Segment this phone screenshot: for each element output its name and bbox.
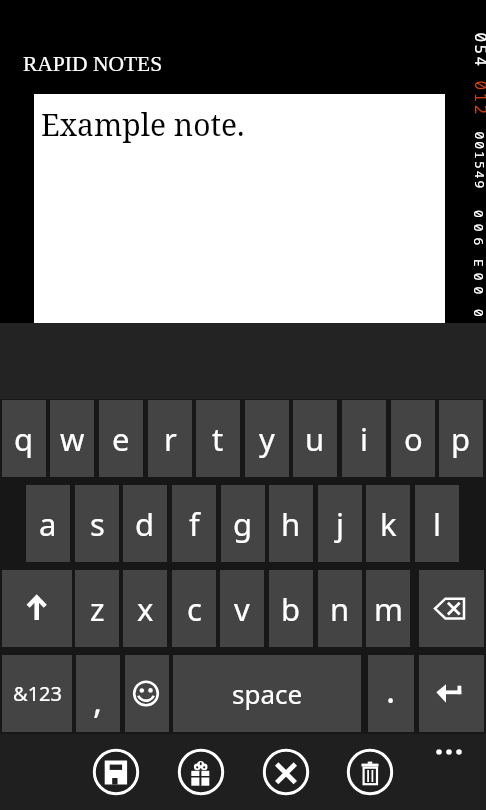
- staticText: c: [187, 588, 202, 630]
- staticText: x: [137, 588, 154, 630]
- staticText: j: [336, 503, 344, 545]
- staticText: o: [404, 418, 423, 460]
- staticText: Example note.: [41, 104, 245, 145]
- staticText: e: [112, 418, 130, 460]
- staticText: a: [39, 503, 57, 545]
- button[interactable]: j: [318, 485, 362, 562]
- button[interactable]: w: [50, 400, 94, 477]
- staticText: 0: [470, 309, 486, 317]
- button[interactable]: .: [368, 655, 414, 732]
- button[interactable]: space: [173, 655, 361, 732]
- staticText: 012: [469, 80, 486, 117]
- staticText: l: [433, 503, 441, 545]
- button[interactable]: c: [172, 570, 216, 647]
- button[interactable]: p: [439, 400, 483, 477]
- button[interactable]: o: [391, 400, 435, 477]
- button[interactable]: f: [172, 485, 216, 562]
- button[interactable]: [2, 570, 72, 647]
- staticText: v: [234, 588, 250, 630]
- staticText: w: [60, 418, 85, 460]
- staticText: f: [189, 503, 200, 545]
- button[interactable]: z: [75, 570, 119, 647]
- button[interactable]: k: [366, 485, 410, 562]
- staticText: .: [386, 667, 396, 713]
- staticText: n: [330, 588, 350, 630]
- button[interactable]: i: [342, 400, 386, 477]
- staticText: b: [281, 588, 301, 630]
- button[interactable]: Example note.: [34, 94, 445, 323]
- button[interactable]: [419, 655, 484, 732]
- staticText: q: [14, 418, 34, 460]
- staticText: &123: [13, 680, 62, 707]
- button[interactable]: a: [26, 485, 70, 562]
- staticText: E00: [470, 259, 486, 301]
- button[interactable]: m: [366, 570, 410, 647]
- staticText: p: [451, 418, 471, 460]
- button[interactable]: l: [415, 485, 459, 562]
- button[interactable]: g: [221, 485, 265, 562]
- button[interactable]: [125, 655, 169, 732]
- button[interactable]: h: [269, 485, 313, 562]
- button[interactable]: s: [75, 485, 119, 562]
- button[interactable]: b: [269, 570, 313, 647]
- button[interactable]: n: [318, 570, 362, 647]
- staticText: y: [259, 418, 275, 460]
- staticText: RAPID NOTES: [23, 52, 163, 76]
- staticText: z: [90, 588, 105, 630]
- button[interactable]: [346, 748, 394, 796]
- button[interactable]: d: [123, 485, 167, 562]
- staticText: 001549: [470, 131, 486, 190]
- staticText: s: [90, 503, 105, 545]
- button[interactable]: r: [148, 400, 192, 477]
- staticText: m: [374, 588, 403, 630]
- staticText: k: [380, 503, 397, 545]
- staticText: t: [212, 418, 224, 460]
- staticText: d: [135, 503, 155, 545]
- staticText: h: [281, 503, 301, 545]
- button[interactable]: [92, 748, 140, 796]
- button[interactable]: u: [293, 400, 337, 477]
- button[interactable]: v: [220, 570, 264, 647]
- staticText: 054: [469, 32, 486, 69]
- button[interactable]: e: [99, 400, 143, 477]
- button[interactable]: [419, 570, 484, 647]
- button[interactable]: y: [245, 400, 289, 477]
- button[interactable]: x: [123, 570, 167, 647]
- staticText: g: [233, 503, 253, 545]
- button[interactable]: [262, 748, 310, 796]
- button[interactable]: [430, 742, 468, 762]
- button[interactable]: t: [196, 400, 240, 477]
- staticText: i: [360, 418, 368, 460]
- staticText: 006: [470, 210, 486, 252]
- button[interactable]: ,: [76, 655, 120, 732]
- button[interactable]: [177, 748, 225, 796]
- staticText: u: [305, 418, 325, 460]
- staticText: r: [164, 418, 177, 460]
- staticText: space: [232, 676, 303, 711]
- staticText: ,: [93, 678, 103, 724]
- button[interactable]: &123: [2, 655, 72, 732]
- button[interactable]: q: [2, 400, 46, 477]
